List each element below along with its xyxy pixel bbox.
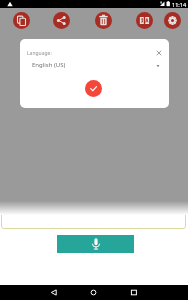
button[interactable]: Copy <box>13 12 30 29</box>
button[interactable]: Close <box>153 47 165 59</box>
staticText: Language: <box>27 50 52 57</box>
button[interactable]: Confirm <box>85 80 102 97</box>
button[interactable]: Speak <box>57 235 134 253</box>
button[interactable]: Delete <box>95 12 112 29</box>
button[interactable]: Settings <box>164 12 181 29</box>
button[interactable]: Share <box>53 12 70 29</box>
staticText: English (US) <box>32 61 66 69</box>
staticText: 11:14 <box>172 1 187 8</box>
button[interactable]: Translate <box>136 12 153 29</box>
